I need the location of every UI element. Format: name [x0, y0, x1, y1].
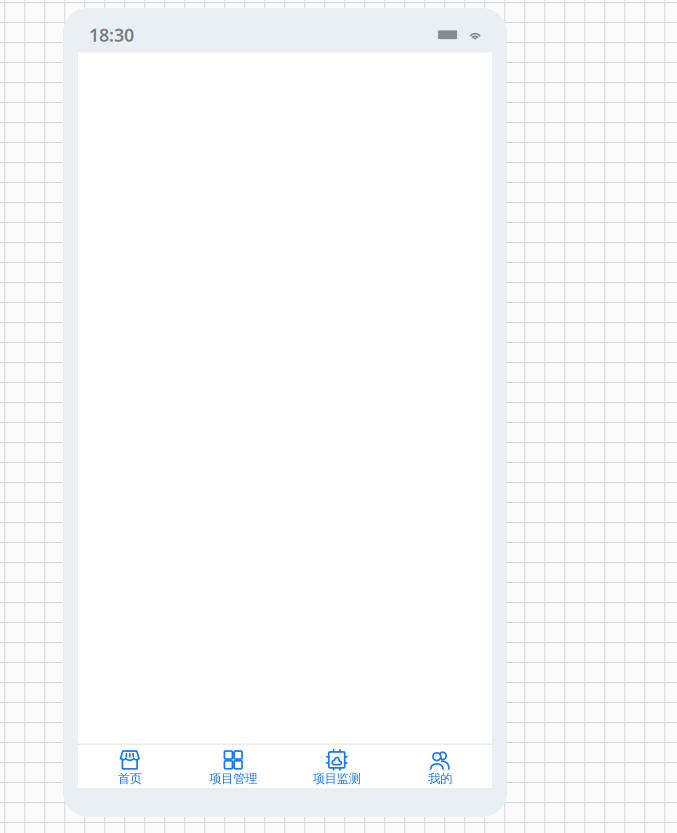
staticText: 项目管理 [209, 771, 257, 786]
button[interactable]: 我的 [388, 745, 492, 788]
staticText: 项目监测 [313, 771, 361, 786]
button[interactable]: 项目管理 [181, 745, 285, 788]
staticText: 18:30 [89, 23, 134, 47]
button[interactable]: 项目监测 [285, 745, 388, 788]
staticText: 我的 [428, 771, 452, 786]
staticText: 首页 [118, 771, 142, 786]
button[interactable]: 首页 [78, 745, 181, 788]
